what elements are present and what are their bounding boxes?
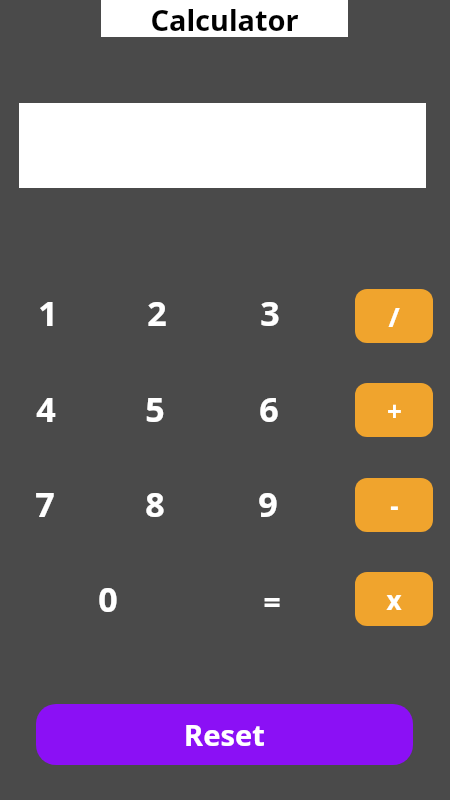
button[interactable]: 2 — [125, 286, 189, 340]
button[interactable]: 6 — [237, 382, 301, 436]
staticText: 7 — [35, 481, 55, 527]
button[interactable]: Plus — [355, 383, 433, 437]
staticText: 4 — [36, 386, 56, 432]
staticText: 6 — [259, 386, 279, 432]
button[interactable]: 5 — [123, 382, 187, 436]
staticText: 3 — [260, 290, 280, 336]
staticText: Calculator — [150, 0, 299, 37]
staticText: + — [387, 393, 402, 428]
button[interactable]: Multiply — [355, 572, 433, 626]
staticText: 5 — [145, 386, 165, 432]
button[interactable]: = — [240, 574, 304, 628]
staticText: Reset — [184, 715, 265, 754]
staticText: 1 — [38, 290, 58, 336]
staticText: 8 — [145, 481, 165, 527]
button[interactable]: Reset — [36, 704, 413, 765]
staticText: 9 — [258, 481, 278, 527]
button[interactable]: 7 — [13, 477, 77, 531]
button[interactable]: Minus — [355, 478, 433, 532]
button[interactable]: 3 — [238, 286, 302, 340]
button[interactable]: 4 — [14, 382, 78, 436]
staticText: / — [388, 298, 400, 335]
button[interactable]: 0 — [76, 572, 140, 626]
staticText: - — [390, 488, 399, 523]
button[interactable]: 9 — [236, 477, 300, 531]
button[interactable]: 1 — [16, 286, 80, 340]
staticText: = — [263, 581, 281, 622]
staticText: 2 — [147, 290, 167, 336]
button[interactable]: Divide — [355, 289, 433, 343]
button[interactable]: 8 — [123, 477, 187, 531]
staticText: x — [386, 582, 402, 617]
staticText: 0 — [98, 576, 118, 622]
